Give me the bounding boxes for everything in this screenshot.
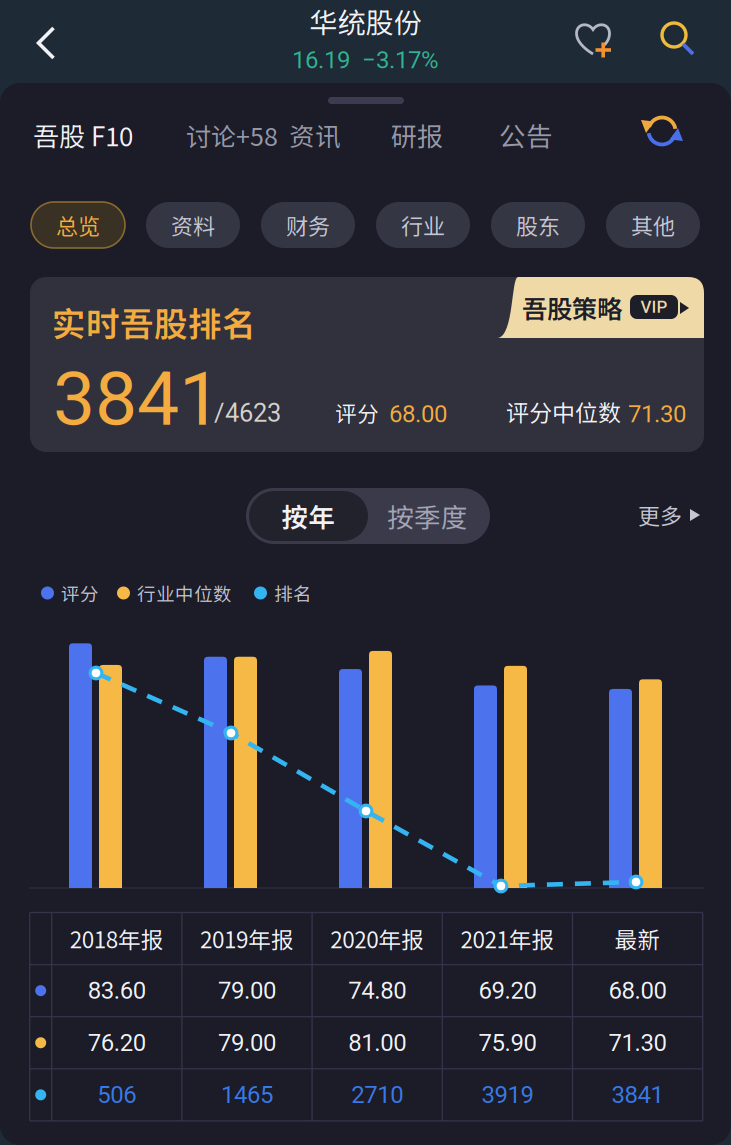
button[interactable]: 研报 — [388, 109, 446, 161]
staticText: VIP — [640, 297, 667, 317]
staticText: 71.30 — [628, 400, 686, 428]
staticText: 68.00 — [609, 977, 667, 1005]
button[interactable]: 吾股策略 — [498, 277, 704, 338]
button[interactable]: 总览 — [31, 202, 125, 248]
staticText: 吾股 F10 — [33, 116, 133, 154]
staticText: 评分 — [335, 397, 379, 428]
staticText: 实时吾股排名 — [52, 298, 256, 346]
button[interactable]: 资料 — [146, 202, 240, 248]
staticText: 83.60 — [88, 977, 146, 1005]
staticText: 81.00 — [348, 1029, 406, 1057]
staticText: 68.00 — [389, 400, 447, 428]
staticText: 资料 — [171, 209, 215, 241]
staticText: 行业中位数 — [137, 580, 232, 606]
button[interactable]: Back — [8, 3, 84, 83]
staticText: 79.00 — [218, 977, 276, 1005]
button[interactable]: 资讯 — [288, 109, 342, 161]
staticText: 79.00 — [218, 1029, 276, 1057]
button[interactable]: 讨论+58 — [182, 109, 282, 161]
staticText: 2018年报 — [70, 922, 164, 955]
staticText: 76.20 — [88, 1029, 146, 1057]
staticText: 3841 — [53, 355, 221, 443]
staticText: 3841 — [612, 1081, 664, 1109]
staticText: 506 — [97, 1081, 136, 1109]
staticText: /4623 — [214, 398, 281, 428]
staticText: 2020年报 — [330, 922, 424, 955]
button[interactable]: 财务 — [261, 202, 355, 248]
button[interactable]: Add to watchlist — [573, 18, 617, 62]
staticText: 评分中位数 — [506, 395, 621, 428]
staticText: 74.80 — [348, 977, 406, 1005]
staticText: 行业 — [401, 209, 445, 241]
staticText: 资讯 — [289, 116, 341, 153]
staticText: 排名 — [274, 580, 312, 606]
staticText: 股东 — [516, 209, 560, 241]
staticText: 16.19 −3.17% — [292, 46, 439, 74]
staticText: 2021年报 — [460, 922, 554, 955]
button[interactable]: Refresh — [641, 109, 685, 153]
button[interactable]: 按季度 — [368, 491, 487, 541]
staticText: 按季度 — [387, 497, 468, 535]
staticText: 研报 — [391, 116, 443, 154]
staticText: 75.90 — [478, 1029, 536, 1057]
staticText: 评分 — [61, 580, 99, 606]
staticText: 财务 — [286, 209, 330, 241]
staticText: 最新 — [615, 922, 661, 955]
button[interactable]: 按年 — [249, 491, 368, 541]
staticText: 按年 — [281, 497, 335, 535]
staticText: 总览 — [56, 209, 100, 241]
button[interactable]: 行业 — [376, 202, 470, 248]
staticText: 2710 — [351, 1081, 403, 1109]
staticText: 吾股策略 — [522, 289, 622, 326]
staticText: 2019年报 — [200, 922, 294, 955]
staticText: 71.30 — [609, 1029, 667, 1057]
button[interactable]: 吾股 F10 — [29, 109, 137, 161]
button[interactable]: 其他 — [606, 202, 700, 248]
staticText: 3919 — [481, 1081, 533, 1109]
button[interactable]: 股东 — [491, 202, 585, 248]
staticText: 华统股份 — [309, 1, 421, 41]
staticText: 更多 — [638, 499, 682, 531]
staticText: 其他 — [631, 209, 675, 241]
button[interactable]: Search — [657, 18, 701, 62]
staticText: 讨论+58 — [186, 117, 278, 153]
button[interactable]: 更多 — [638, 493, 700, 537]
staticText: 69.20 — [478, 977, 536, 1005]
staticText: 1465 — [221, 1081, 273, 1109]
staticText: 公告 — [499, 116, 553, 154]
button[interactable]: 公告 — [497, 109, 555, 161]
